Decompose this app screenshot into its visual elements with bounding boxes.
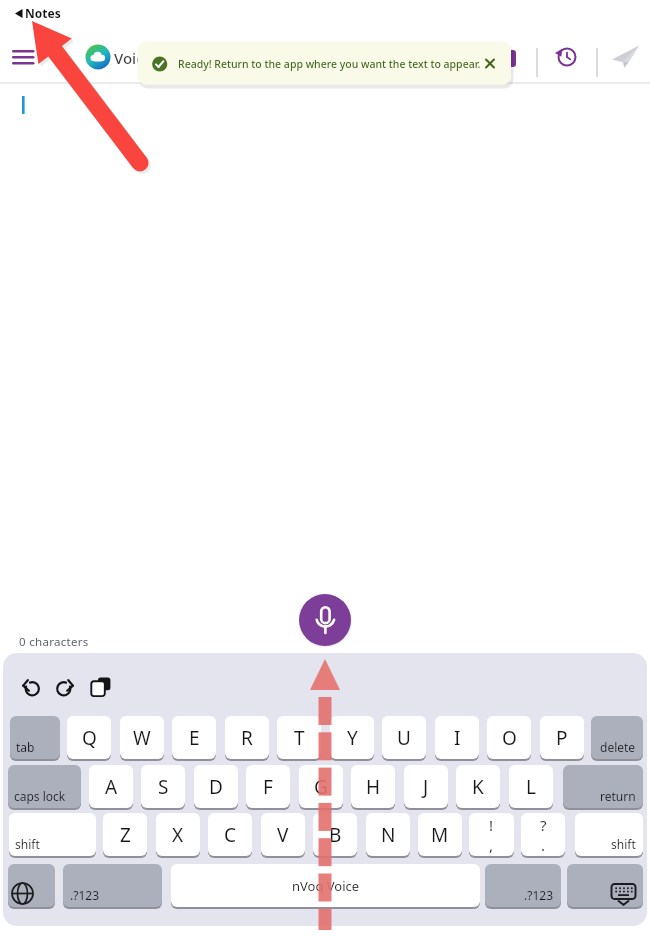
staticText: Voice (114, 48, 153, 68)
staticText: G (314, 774, 328, 800)
staticText: . (541, 835, 546, 855)
staticText: F (263, 774, 273, 800)
staticText: delete (600, 739, 636, 755)
staticText: P (556, 725, 568, 751)
staticText: N (381, 822, 396, 848)
staticText: tab (16, 739, 35, 755)
staticText: Notes (25, 5, 61, 21)
staticText: .?123 (524, 887, 554, 903)
staticText: Q (82, 725, 97, 751)
staticText: U (397, 725, 411, 751)
staticText: T (294, 725, 305, 751)
staticText: 0 characters (19, 634, 89, 650)
staticText: caps lock (14, 788, 66, 804)
staticText: O (502, 725, 517, 751)
staticText: nVoq Voice (292, 877, 360, 895)
staticText: shift (611, 836, 636, 852)
staticText: C (224, 822, 237, 848)
staticText: S (158, 774, 169, 800)
staticText: L (526, 774, 536, 800)
staticText: ! (489, 815, 494, 835)
staticText: V (277, 822, 289, 848)
staticText: R (241, 725, 253, 751)
staticText: M (431, 822, 449, 848)
staticText: K (472, 774, 484, 800)
staticText: ? (540, 815, 547, 835)
staticText: , (489, 835, 494, 855)
staticText: H (366, 774, 381, 800)
staticText: D (209, 774, 223, 800)
staticText: A (105, 774, 118, 800)
staticText: B (329, 822, 342, 848)
staticText: E (189, 725, 200, 751)
staticText: W (133, 725, 151, 751)
staticText: Z (120, 822, 131, 848)
staticText: X (172, 822, 184, 848)
staticText: .?123 (70, 887, 100, 903)
staticText: Y (347, 725, 358, 751)
staticText: I (454, 725, 461, 751)
staticText: Ready! Return to the app where you want … (178, 57, 481, 71)
staticText: return (600, 788, 636, 804)
staticText: shift (15, 836, 40, 852)
staticText: J (423, 774, 429, 800)
